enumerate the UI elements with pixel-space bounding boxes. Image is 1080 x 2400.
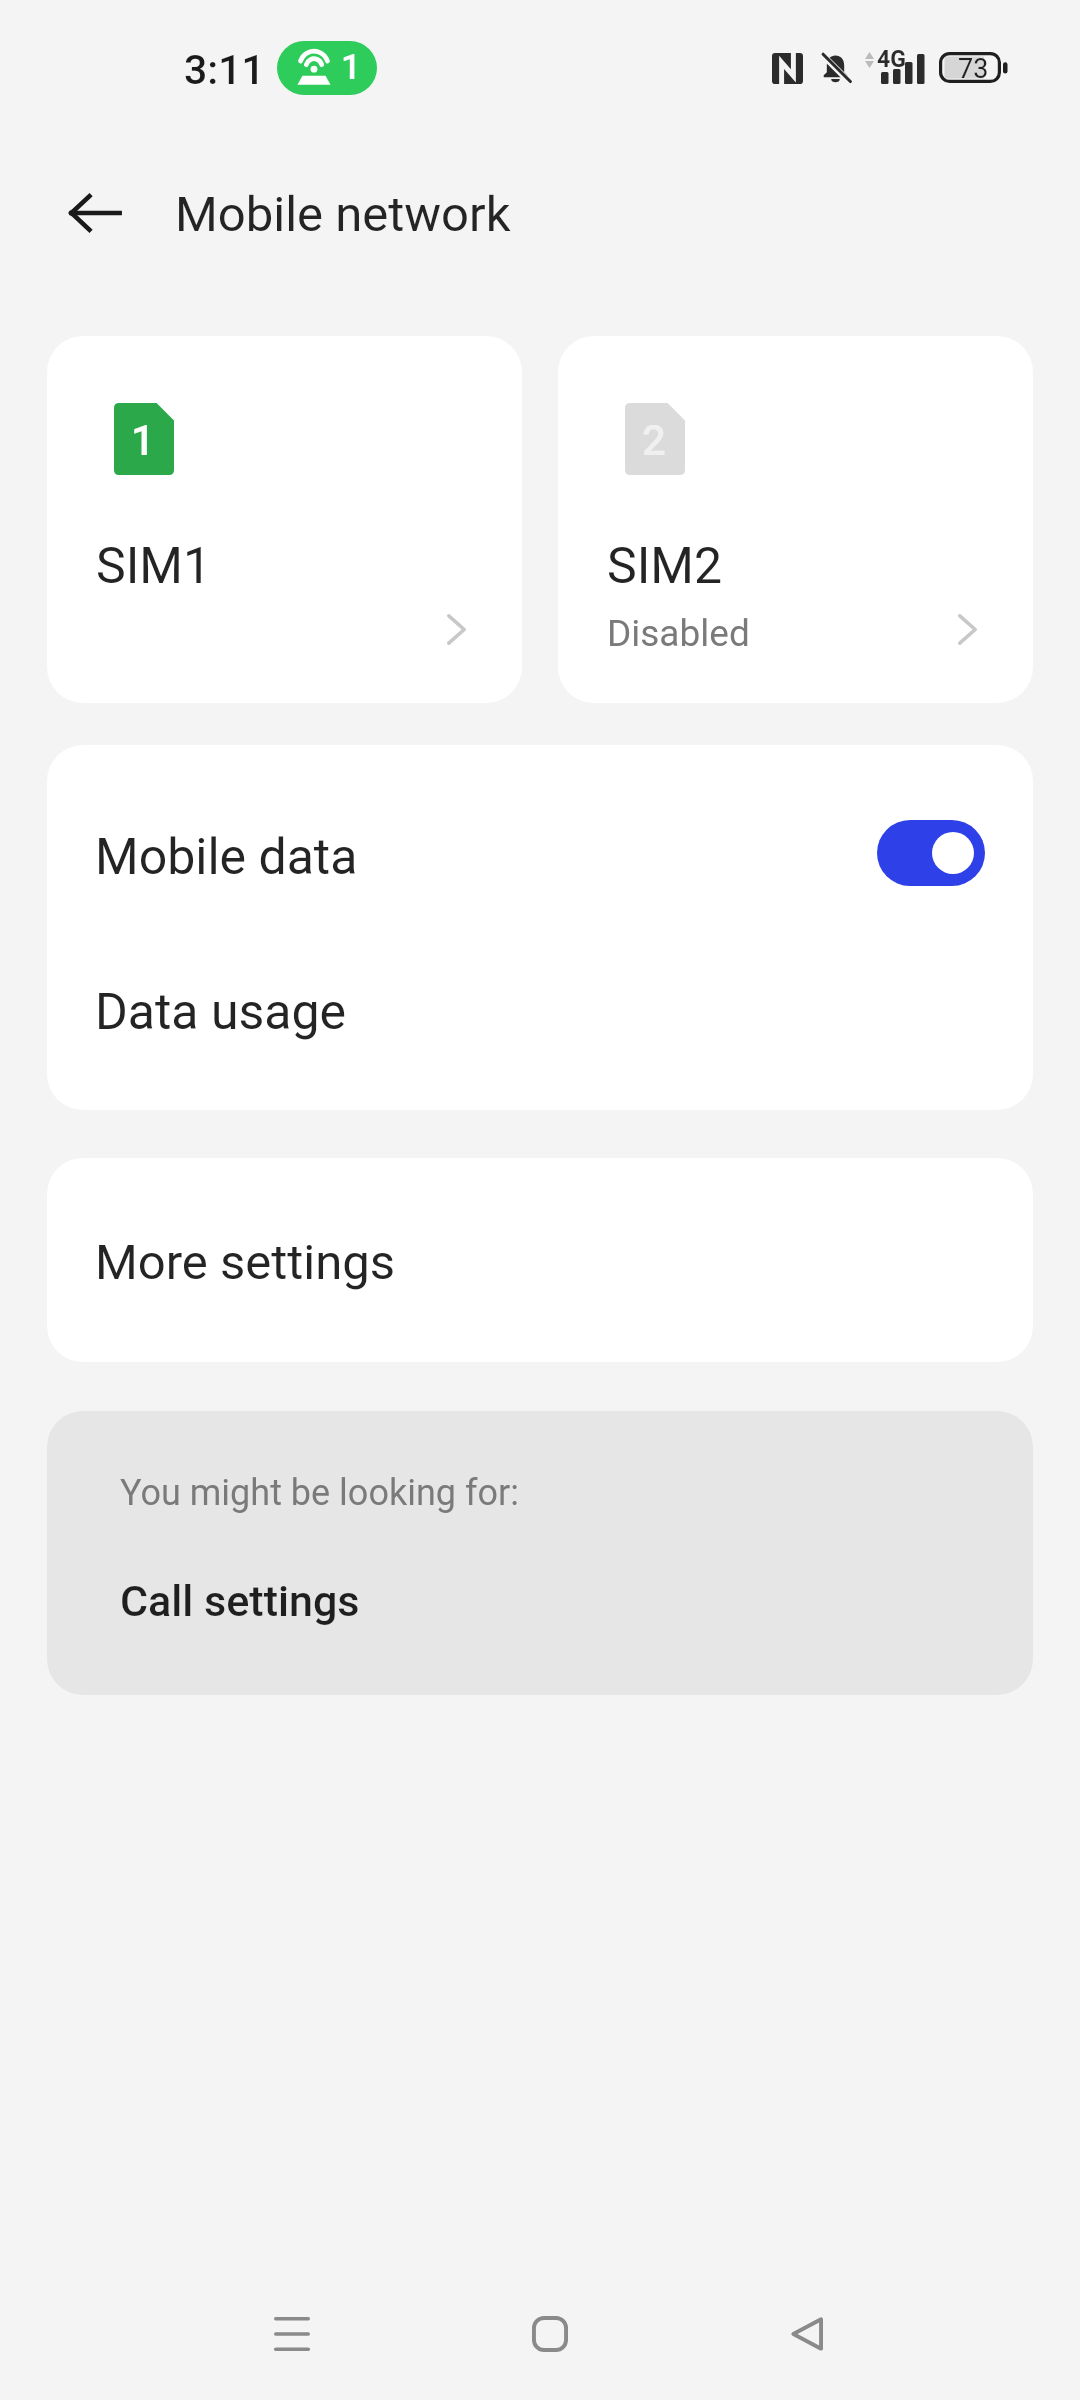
staticText: More settings	[95, 1234, 396, 1291]
staticText: SIM2	[607, 537, 723, 596]
staticText: Data usage	[95, 983, 347, 1042]
button[interactable]: Back	[747, 2270, 867, 2400]
staticText: 1	[131, 416, 155, 465]
staticText: 3:11	[184, 46, 265, 94]
button[interactable]: Home	[490, 2270, 610, 2400]
staticText: You might be looking for:	[120, 1472, 519, 1514]
button[interactable]: Recents	[232, 2270, 352, 2400]
staticText: Disabled	[607, 612, 750, 655]
staticText: 2	[642, 416, 666, 465]
button[interactable]: Mobile data	[47, 745, 1033, 960]
staticText: Mobile data	[95, 828, 358, 887]
button[interactable]: More settings	[47, 1158, 1033, 1362]
button[interactable]: Back	[47, 165, 143, 261]
button[interactable]: Call settings	[47, 1576, 1033, 1626]
button[interactable]: 2	[558, 336, 1033, 703]
staticText: 4G	[877, 46, 906, 73]
button[interactable]: 1	[47, 336, 522, 703]
button[interactable]: Mobile data toggle	[877, 820, 985, 886]
staticText: Mobile network	[175, 186, 511, 243]
staticText: SIM1	[96, 537, 212, 596]
button[interactable]: Data usage	[47, 960, 1033, 1110]
staticText: 1	[341, 47, 361, 88]
staticText: 73	[958, 53, 989, 85]
staticText: Call settings	[120, 1576, 360, 1626]
